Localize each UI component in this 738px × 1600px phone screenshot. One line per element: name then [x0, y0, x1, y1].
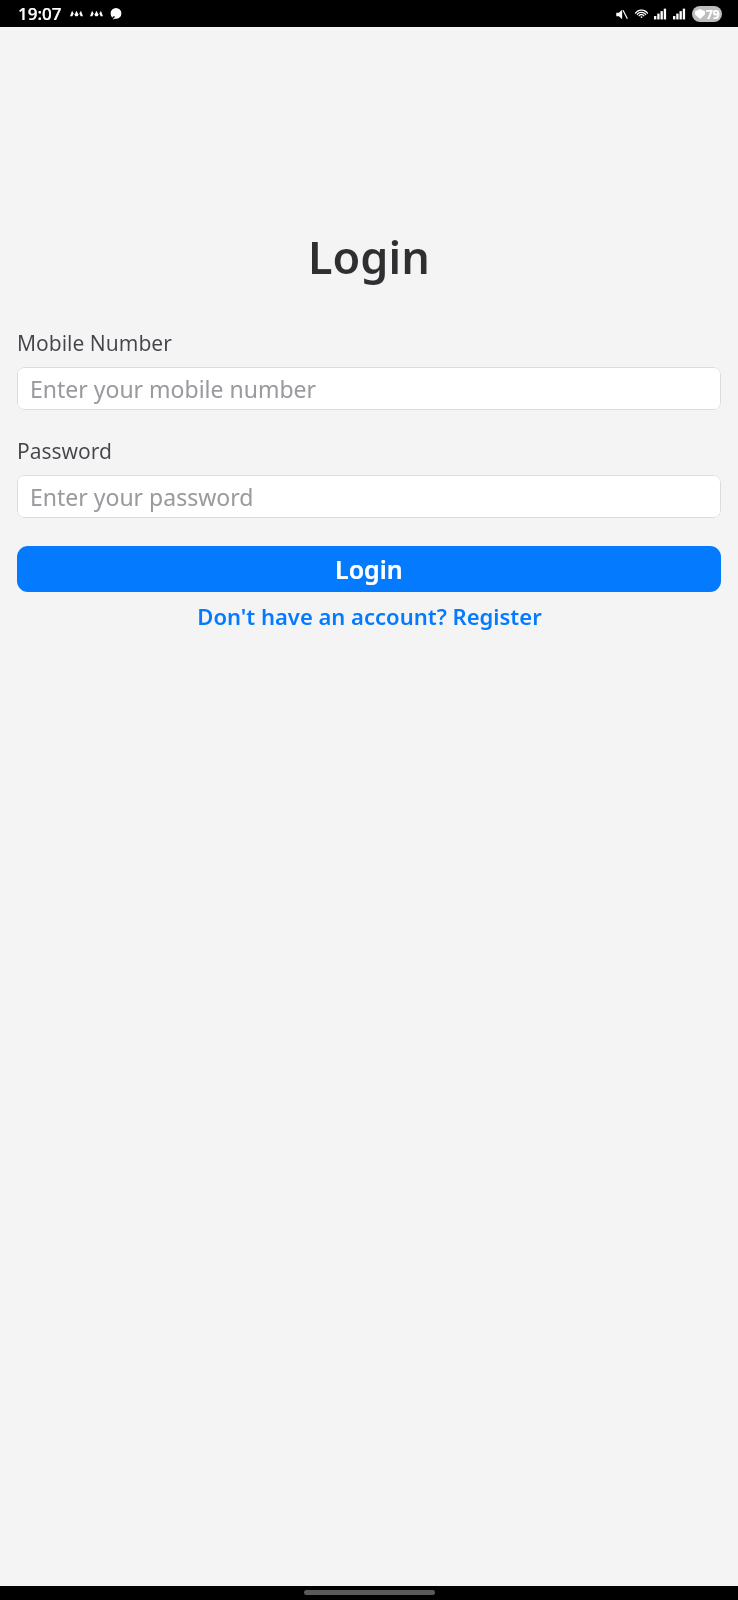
button[interactable]: Password input: [17, 475, 721, 518]
staticText: Don't have an account? Register: [197, 601, 542, 631]
button[interactable]: Mobile number input: [17, 367, 721, 410]
button[interactable]: Don't have an account? Register: [17, 592, 721, 640]
staticText: Enter your mobile number: [30, 373, 317, 404]
button[interactable]: Login: [17, 546, 721, 592]
staticText: Mobile Number: [17, 329, 172, 358]
staticText: Login: [0, 226, 738, 287]
staticText: Password: [17, 437, 112, 466]
staticText: Login: [335, 552, 403, 586]
staticText: Enter your password: [30, 481, 254, 512]
staticText: 19:07: [18, 2, 62, 25]
staticText: 79: [706, 6, 720, 22]
